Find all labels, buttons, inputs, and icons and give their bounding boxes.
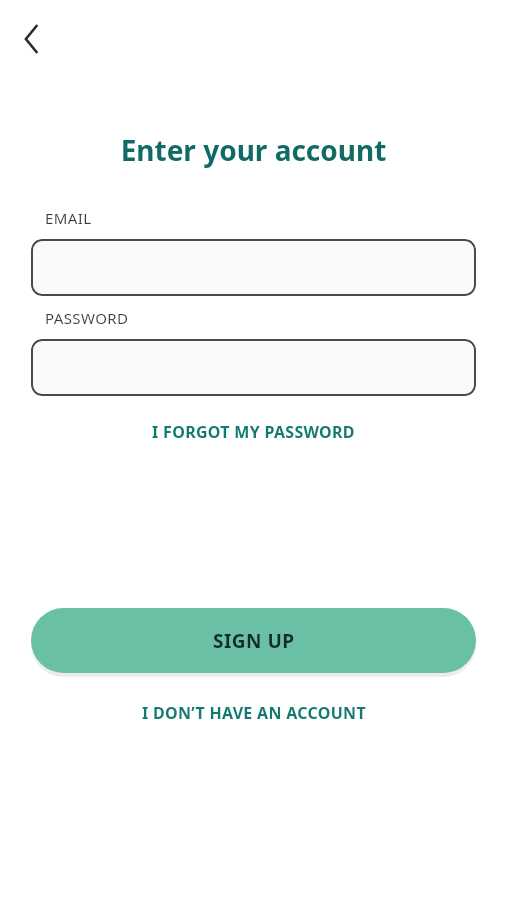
staticText: PASSWORD xyxy=(45,308,129,328)
staticText: I DON’T HAVE AN ACCOUNT xyxy=(142,702,366,724)
button[interactable] xyxy=(31,339,476,396)
button[interactable]: SIGN UP xyxy=(31,608,476,673)
button[interactable]: I FORGOT MY PASSWORD xyxy=(0,413,507,451)
button[interactable] xyxy=(31,239,476,296)
staticText: Enter your account xyxy=(0,131,507,169)
button[interactable]: Back xyxy=(10,17,54,61)
staticText: EMAIL xyxy=(45,208,92,228)
staticText: I FORGOT MY PASSWORD xyxy=(152,421,355,443)
staticText: SIGN UP xyxy=(213,628,295,654)
button[interactable]: I DON’T HAVE AN ACCOUNT xyxy=(0,694,507,732)
